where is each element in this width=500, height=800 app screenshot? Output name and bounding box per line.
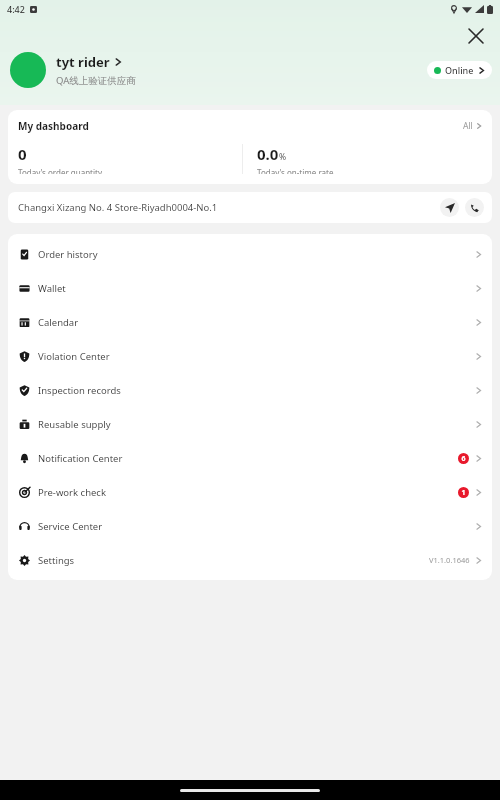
button[interactable]: Navigate (440, 198, 459, 217)
button[interactable]: Pre-work check (8, 475, 492, 509)
staticText: Notification Center (38, 452, 123, 465)
button[interactable]: tyt rider (10, 52, 136, 88)
button[interactable]: Online (427, 61, 492, 79)
staticText: Wallet (38, 282, 66, 295)
staticText: All (463, 120, 473, 132)
button[interactable]: Calendar (8, 305, 492, 339)
button[interactable]: Reusable supply (8, 407, 492, 441)
staticText: 1 (461, 488, 466, 498)
staticText: Service Center (38, 520, 103, 533)
button[interactable]: Service Center (8, 509, 492, 543)
staticText: Reusable supply (38, 418, 111, 431)
staticText: 4:42 (7, 3, 25, 15)
button[interactable]: Close (460, 20, 492, 52)
button[interactable]: Inspection records (8, 373, 492, 407)
staticText: 6 (461, 454, 466, 464)
staticText: 0 (18, 144, 27, 164)
staticText: 0.0 (257, 144, 279, 164)
staticText: Inspection records (38, 384, 121, 397)
staticText: My dashboard (18, 119, 89, 133)
staticText: V1.1.0.1646 (429, 555, 470, 565)
button[interactable]: Notification Center (8, 441, 492, 475)
staticText: Violation Center (38, 350, 110, 363)
button[interactable]: Order history (8, 237, 492, 271)
staticText: % (279, 151, 287, 163)
staticText: Calendar (38, 316, 79, 329)
staticText: Settings (38, 554, 75, 567)
button[interactable]: Changxi Xizang No. 4 Store-Riyadh0004-No… (8, 192, 492, 223)
button[interactable]: Call (465, 198, 484, 217)
button[interactable]: Settings (8, 543, 492, 577)
staticText: tyt rider (56, 53, 110, 71)
staticText: Changxi Xizang No. 4 Store-Riyadh0004-No… (18, 201, 218, 214)
staticText: Today's on-time rate (257, 167, 334, 174)
button[interactable]: Violation Center (8, 339, 492, 373)
staticText: Today's order quantity (18, 167, 103, 174)
staticText: Online (445, 64, 474, 76)
staticText: Pre-work check (38, 486, 107, 499)
staticText: QA线上验证供应商 (56, 74, 136, 87)
button[interactable]: My dashboard (8, 110, 492, 184)
button[interactable]: Wallet (8, 271, 492, 305)
staticText: Order history (38, 248, 98, 261)
